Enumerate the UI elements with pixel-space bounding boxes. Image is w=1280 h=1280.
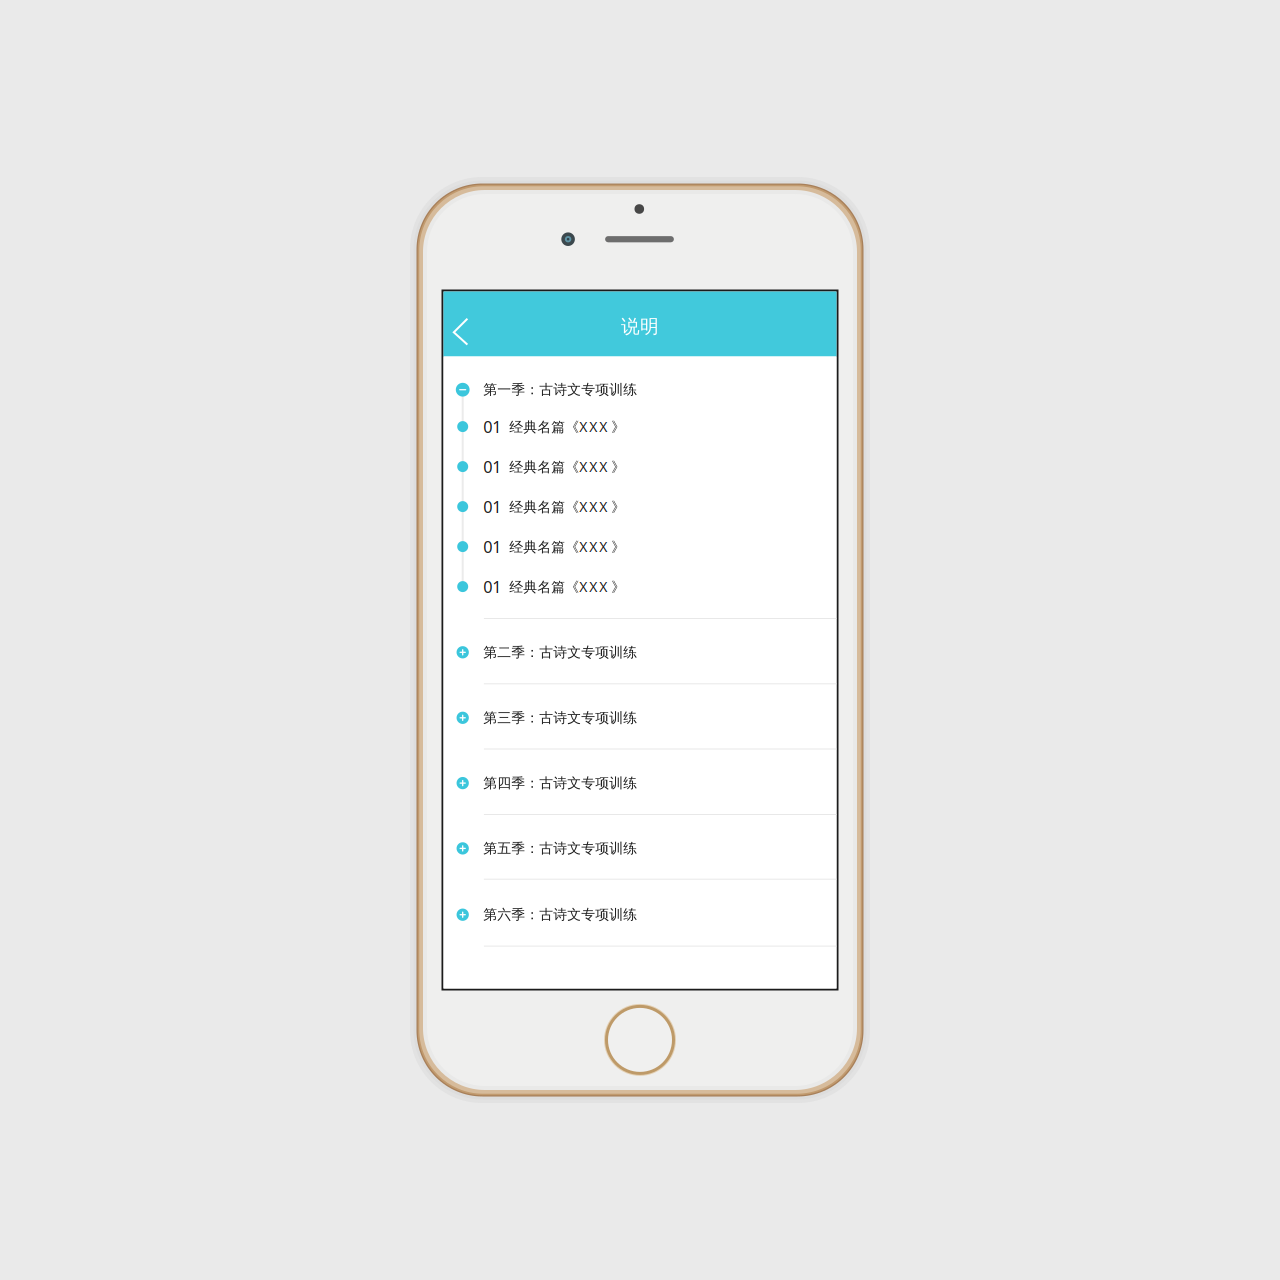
staticText: 01: [483, 495, 501, 518]
staticText: 01: [483, 455, 501, 478]
button[interactable]: 第四季：古诗文专项训练: [443, 751, 836, 816]
staticText: 01: [483, 575, 501, 598]
staticText: 01: [483, 535, 501, 558]
button[interactable]: 01: [443, 447, 836, 487]
staticText: 第六季：古诗文专项训练: [483, 906, 637, 923]
button[interactable]: Back: [443, 291, 493, 356]
staticText: 经典名篇《X X X 》: [501, 417, 625, 436]
staticText: 第五季：古诗文专项训练: [483, 840, 637, 857]
staticText: 经典名篇《X X X 》: [501, 537, 625, 556]
staticText: 第一季：古诗文专项训练: [483, 381, 637, 398]
staticText: 第三季：古诗文专项训练: [483, 709, 637, 727]
button[interactable]: 第三季：古诗文专项训练: [443, 685, 836, 750]
button[interactable]: 01: [443, 567, 836, 607]
staticText: 01: [483, 415, 501, 438]
button[interactable]: 第六季：古诗文专项训练: [443, 882, 836, 947]
staticText: 经典名篇《X X X 》: [501, 577, 625, 596]
button[interactable]: 01: [443, 487, 836, 527]
button[interactable]: 第一季：古诗文专项训练: [443, 370, 836, 410]
staticText: 第四季：古诗文专项训练: [483, 774, 637, 792]
button[interactable]: 第五季：古诗文专项训练: [443, 816, 836, 881]
button[interactable]: 01: [443, 527, 836, 567]
staticText: 经典名篇《X X X 》: [501, 457, 625, 476]
button[interactable]: 第二季：古诗文专项训练: [443, 620, 836, 685]
staticText: 经典名篇《X X X 》: [501, 497, 625, 516]
button[interactable]: 01: [443, 407, 836, 447]
staticText: 第二季：古诗文专项训练: [483, 644, 637, 661]
staticText: 说明: [621, 315, 659, 338]
